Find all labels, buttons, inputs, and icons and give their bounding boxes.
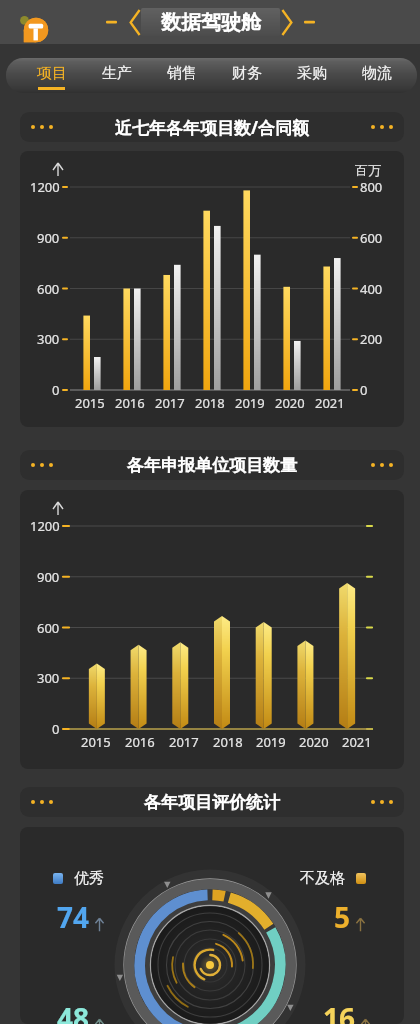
staticText: 2017 (155, 394, 185, 412)
staticText: 2019 (256, 733, 286, 751)
staticText: 2021 (315, 394, 345, 412)
staticText: 2021 (342, 733, 372, 751)
staticText: 不及格 (300, 869, 345, 888)
staticText: 600 (360, 229, 383, 247)
staticText: 2020 (299, 733, 329, 751)
staticText: 300 (37, 330, 60, 348)
staticText: 5 (334, 898, 351, 936)
staticText: 800 (360, 178, 383, 196)
staticText: 400 (360, 280, 383, 298)
staticText: 1200 (30, 178, 60, 196)
staticText: 各年项目评价统计 (144, 792, 280, 813)
staticText: 48 (57, 999, 90, 1024)
staticText: 600 (37, 280, 60, 298)
staticText: 2020 (275, 394, 305, 412)
staticText: 600 (37, 619, 60, 637)
staticText: 2015 (75, 394, 105, 412)
button[interactable]: 财务 (214, 58, 279, 93)
other: Logo (12, 5, 52, 45)
staticText: 销售 (167, 64, 197, 83)
button[interactable]: 物流 (344, 58, 409, 93)
staticText: 0 (360, 381, 368, 399)
staticText: 2016 (125, 733, 155, 751)
staticText: 0 (52, 381, 60, 399)
staticText: 0 (52, 720, 60, 738)
button[interactable]: 近七年各年项目数/合同额 (20, 112, 404, 142)
staticText: 74 (57, 898, 90, 936)
staticText: 2015 (81, 733, 111, 751)
button[interactable]: 生产 (84, 58, 149, 93)
staticText: 物流 (362, 64, 392, 83)
staticText: 2018 (213, 733, 243, 751)
button[interactable]: 各年项目评价统计 (20, 787, 404, 817)
staticText: 200 (360, 330, 383, 348)
staticText: 项目 (37, 64, 67, 83)
staticText: 900 (37, 229, 60, 247)
staticText: 300 (37, 669, 60, 687)
button[interactable]: 销售 (149, 58, 214, 93)
button[interactable]: 采购 (279, 58, 344, 93)
staticText: 财务 (232, 64, 262, 83)
staticText: 生产 (102, 64, 132, 83)
staticText: 数据驾驶舱 (161, 10, 261, 35)
staticText: 900 (37, 568, 60, 586)
staticText: 2017 (169, 733, 199, 751)
staticText: 1200 (30, 517, 60, 535)
staticText: 近七年各年项目数/合同额 (115, 116, 310, 139)
staticText: 各年申报单位项目数量 (127, 455, 297, 476)
staticText: 2018 (195, 394, 225, 412)
staticText: 优秀 (74, 869, 104, 888)
staticText: 2019 (235, 394, 265, 412)
button[interactable]: 优秀 (53, 869, 104, 888)
staticText: 16 (323, 999, 356, 1024)
button[interactable]: 项目 (19, 58, 84, 93)
staticText: 采购 (297, 64, 327, 83)
button[interactable]: 不及格 (300, 869, 366, 888)
button[interactable]: 数据驾驶舱 (141, 8, 280, 36)
staticText: 百万 (355, 162, 381, 178)
staticText: 2016 (115, 394, 145, 412)
button[interactable]: 各年申报单位项目数量 (20, 450, 404, 480)
